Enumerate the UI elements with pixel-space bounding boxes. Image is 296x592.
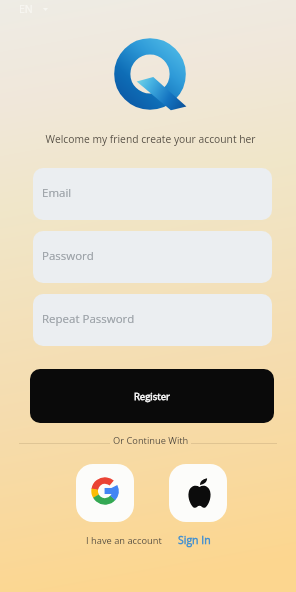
staticText: Repeat Password: [42, 311, 135, 327]
staticText: Register: [134, 390, 170, 403]
staticText: Email: [42, 185, 72, 201]
staticText: Or Continue With: [113, 434, 189, 447]
button[interactable]: Password: [33, 231, 272, 283]
button[interactable]: Email: [33, 168, 272, 220]
button[interactable]: Continue with Apple: [169, 464, 227, 522]
staticText: EN: [19, 2, 33, 16]
staticText: Sign In: [178, 533, 211, 547]
button[interactable]: Change language, English: [14, 0, 53, 20]
button[interactable]: Repeat Password: [33, 294, 272, 346]
button[interactable]: Register: [30, 369, 274, 423]
button[interactable]: Continue with Google: [76, 464, 134, 522]
staticText: Password: [42, 248, 94, 264]
staticText: I have an account: [86, 534, 162, 547]
staticText: Welcome my friend create your account he…: [45, 132, 256, 146]
button[interactable]: Sign In: [178, 533, 211, 547]
